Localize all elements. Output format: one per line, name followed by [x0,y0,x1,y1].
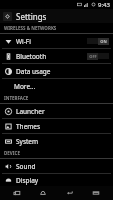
staticText: System [16,137,39,146]
button[interactable]: Back [60,186,80,200]
button[interactable]: Sound [0,159,113,173]
staticText: Themes [16,122,41,131]
button[interactable]: App icon [0,9,113,23]
button[interactable]: System [0,134,113,148]
staticText: More... [14,82,36,91]
staticText: INTERFACE [4,95,29,101]
staticText: Wi-Fi [16,37,31,46]
staticText: WIRELESS & NETWORKS [4,25,57,31]
button[interactable]: Bluetooth [0,49,113,63]
button[interactable]: Home [33,186,53,200]
staticText: Settings [16,11,47,22]
staticText: ON [100,39,107,44]
other: App icon [3,12,12,21]
staticText: Data usage [16,67,51,76]
staticText: DEVICE [4,150,20,156]
button[interactable]: Recent apps [7,186,27,200]
button[interactable]: Menu [86,186,106,200]
button[interactable]: Off [87,52,109,60]
button[interactable]: Display [0,174,113,186]
staticText: OFF [89,54,97,59]
staticText: 9:43 [98,1,110,9]
staticText: Sound [16,162,36,171]
button[interactable]: Themes [0,119,113,133]
button[interactable]: Data usage [0,64,113,78]
staticText: Launcher [16,107,45,116]
button[interactable]: On [87,37,109,45]
staticText: Display [16,176,39,185]
button[interactable]: Launcher [0,104,113,118]
button[interactable]: Wi-Fi [0,34,113,48]
staticText: Bluetooth [16,52,47,61]
button[interactable]: More... [0,79,113,93]
